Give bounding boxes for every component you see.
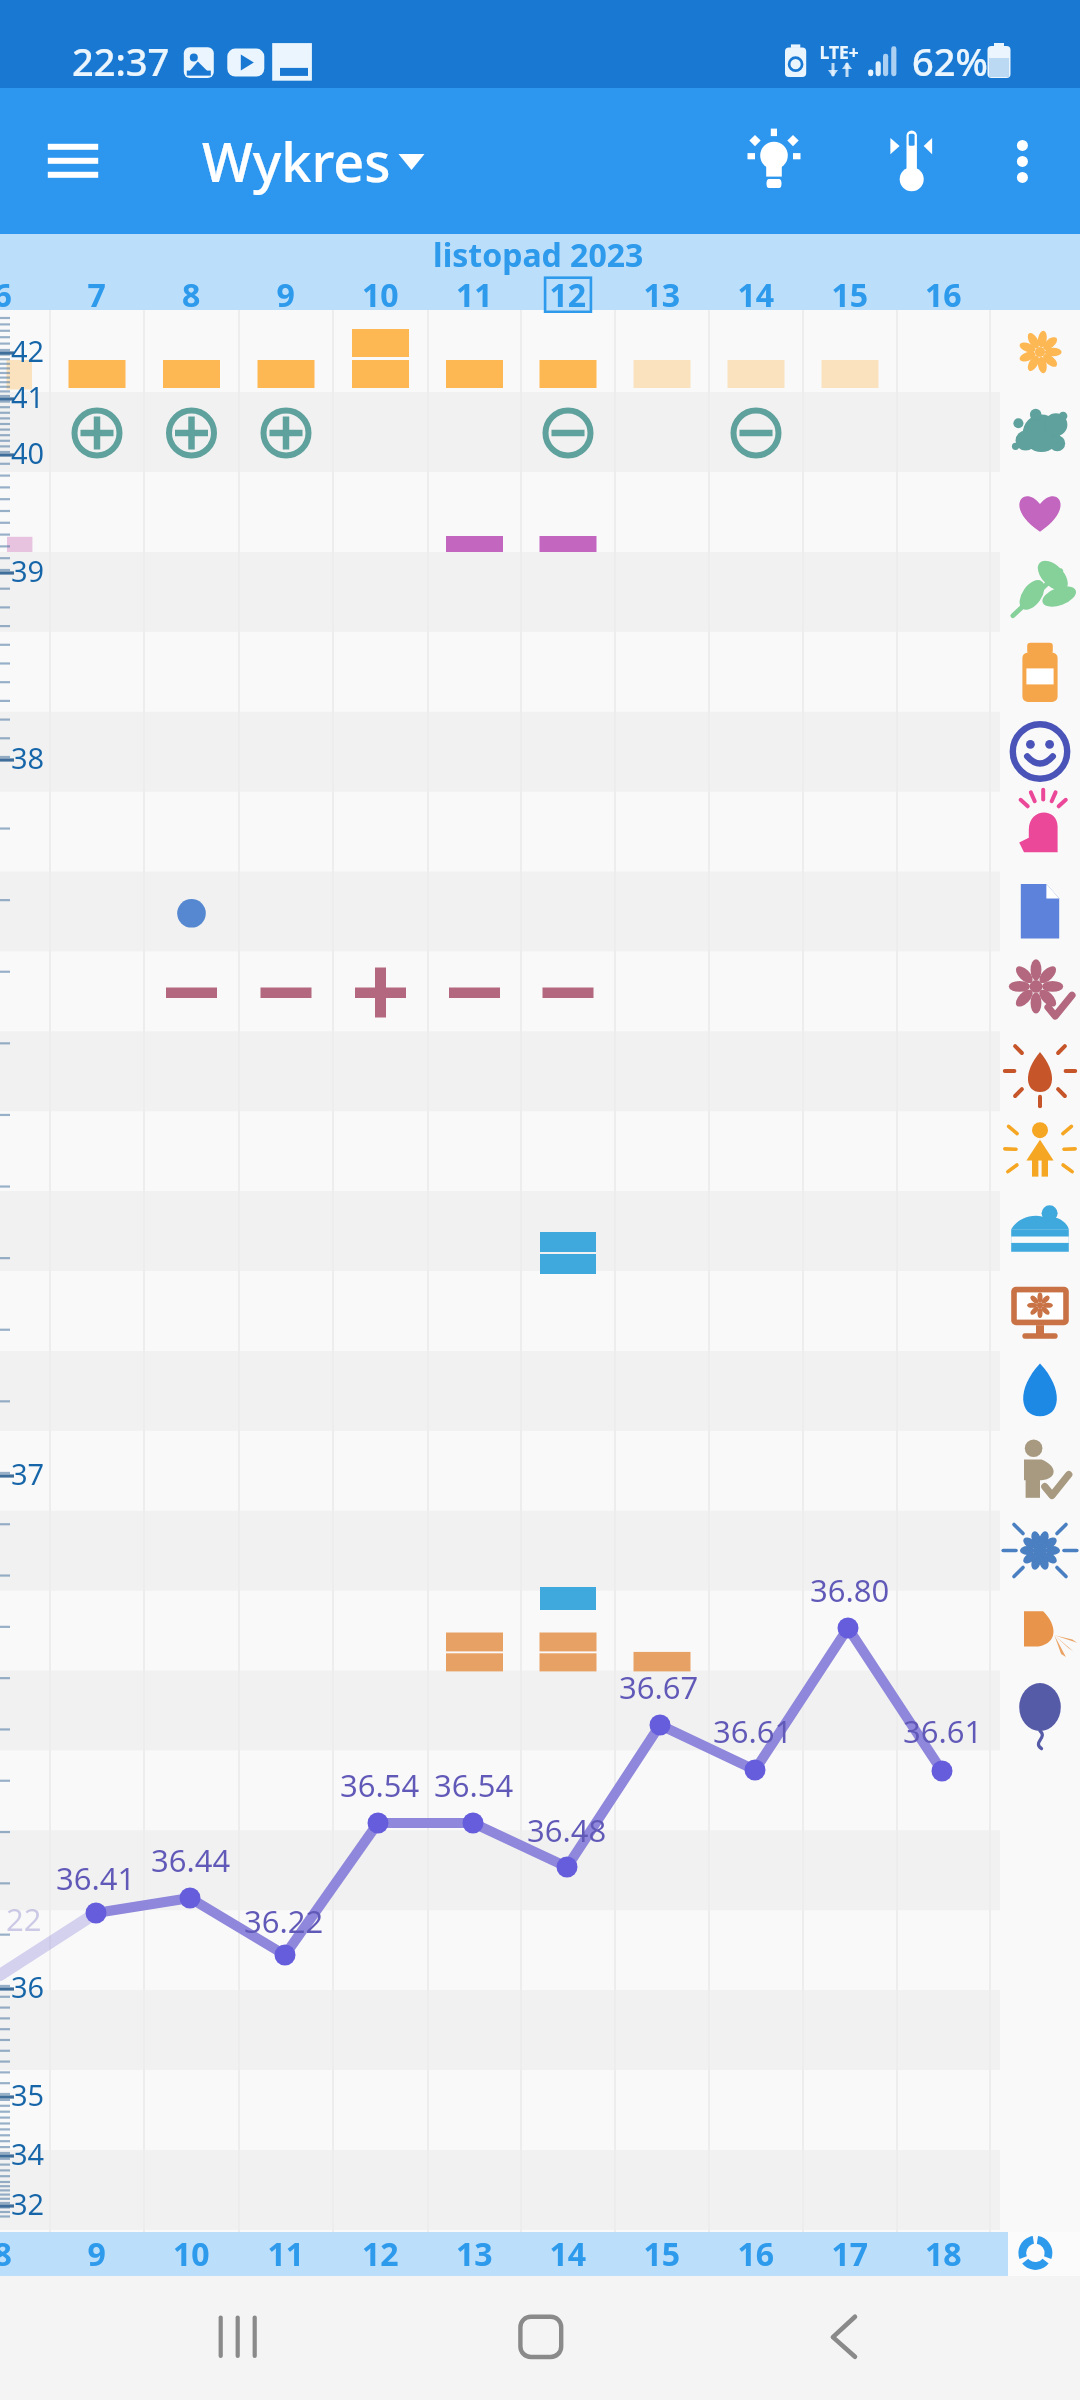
button[interactable]: Symptom legend xyxy=(1000,310,1080,2232)
button[interactable]: Temperature unit xyxy=(864,118,954,208)
button[interactable] xyxy=(190,120,450,210)
button[interactable]: Refresh xyxy=(1000,2232,1080,2276)
button[interactable]: Brightness xyxy=(728,118,818,208)
button[interactable]: Home xyxy=(450,2290,630,2400)
button[interactable]: More options xyxy=(978,118,1062,208)
button[interactable]: Menu xyxy=(30,120,115,205)
button[interactable]: Recents xyxy=(150,2290,330,2400)
button[interactable]: Back xyxy=(750,2290,930,2400)
